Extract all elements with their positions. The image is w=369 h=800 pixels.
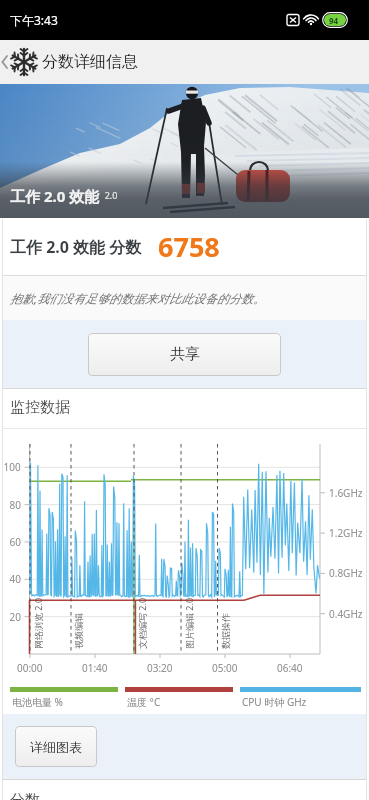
staticText: 下午3:43 <box>10 12 58 28</box>
staticText: 工作 2.0 效能 <box>10 186 100 206</box>
staticText: 6758 <box>158 228 220 265</box>
staticText: 监控数据 <box>10 398 70 417</box>
staticText: 共享 <box>170 345 200 364</box>
staticText: 分数 <box>10 791 40 800</box>
staticText: 2.0 <box>100 189 118 201</box>
button[interactable]: 详细图表 <box>15 726 97 767</box>
staticText: 分数详细信息 <box>42 52 138 72</box>
staticText: 工作 2.0 效能 分数 <box>10 236 142 258</box>
button[interactable]: 分数详细信息 <box>0 40 138 84</box>
staticText: 温度 °C <box>127 695 161 709</box>
staticText: 94 <box>329 15 339 26</box>
staticText: 电池电量 % <box>12 695 63 709</box>
staticText: CPU 时钟 GHz <box>242 695 307 709</box>
staticText: 抱歉,我们没有足够的数据来对比此设备的分数。 <box>10 290 266 306</box>
button[interactable]: 共享 <box>88 333 281 376</box>
staticText: 详细图表 <box>30 739 82 755</box>
